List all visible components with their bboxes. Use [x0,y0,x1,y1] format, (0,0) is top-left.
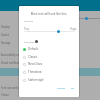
staticText: Tiny [24,27,30,31]
staticText: Display [1,25,10,29]
button[interactable]: OK [70,87,76,90]
staticText: Accessibility settings [1,53,26,57]
button[interactable]: Theodora [19,68,79,76]
staticText: Font size and style [1,86,24,90]
button[interactable]: Default [19,45,79,53]
staticText: Colour [1,93,10,97]
button[interactable]: Satherstyle [19,76,79,84]
staticText: Satherstyle [28,78,44,82]
button[interactable]: CANCEL [56,87,67,90]
button[interactable]: Classic [19,53,79,61]
staticText: Neat Dara [28,62,43,66]
staticText: CANCEL [57,87,66,90]
staticText: Storage [1,41,11,45]
staticText: Visual notifications [1,61,24,65]
staticText: Sound [1,33,9,37]
staticText: Text style [24,40,35,43]
staticText: Huge [70,27,77,31]
staticText: Default [28,47,39,51]
button[interactable]: Neat Dara [19,60,79,68]
staticText: OK [71,87,75,90]
staticText: Classic [28,55,38,59]
staticText: Most text will look like this. [19,12,79,16]
staticText: Theodora [28,70,42,74]
button[interactable]: Info [35,40,38,43]
staticText: Font size [24,20,34,23]
